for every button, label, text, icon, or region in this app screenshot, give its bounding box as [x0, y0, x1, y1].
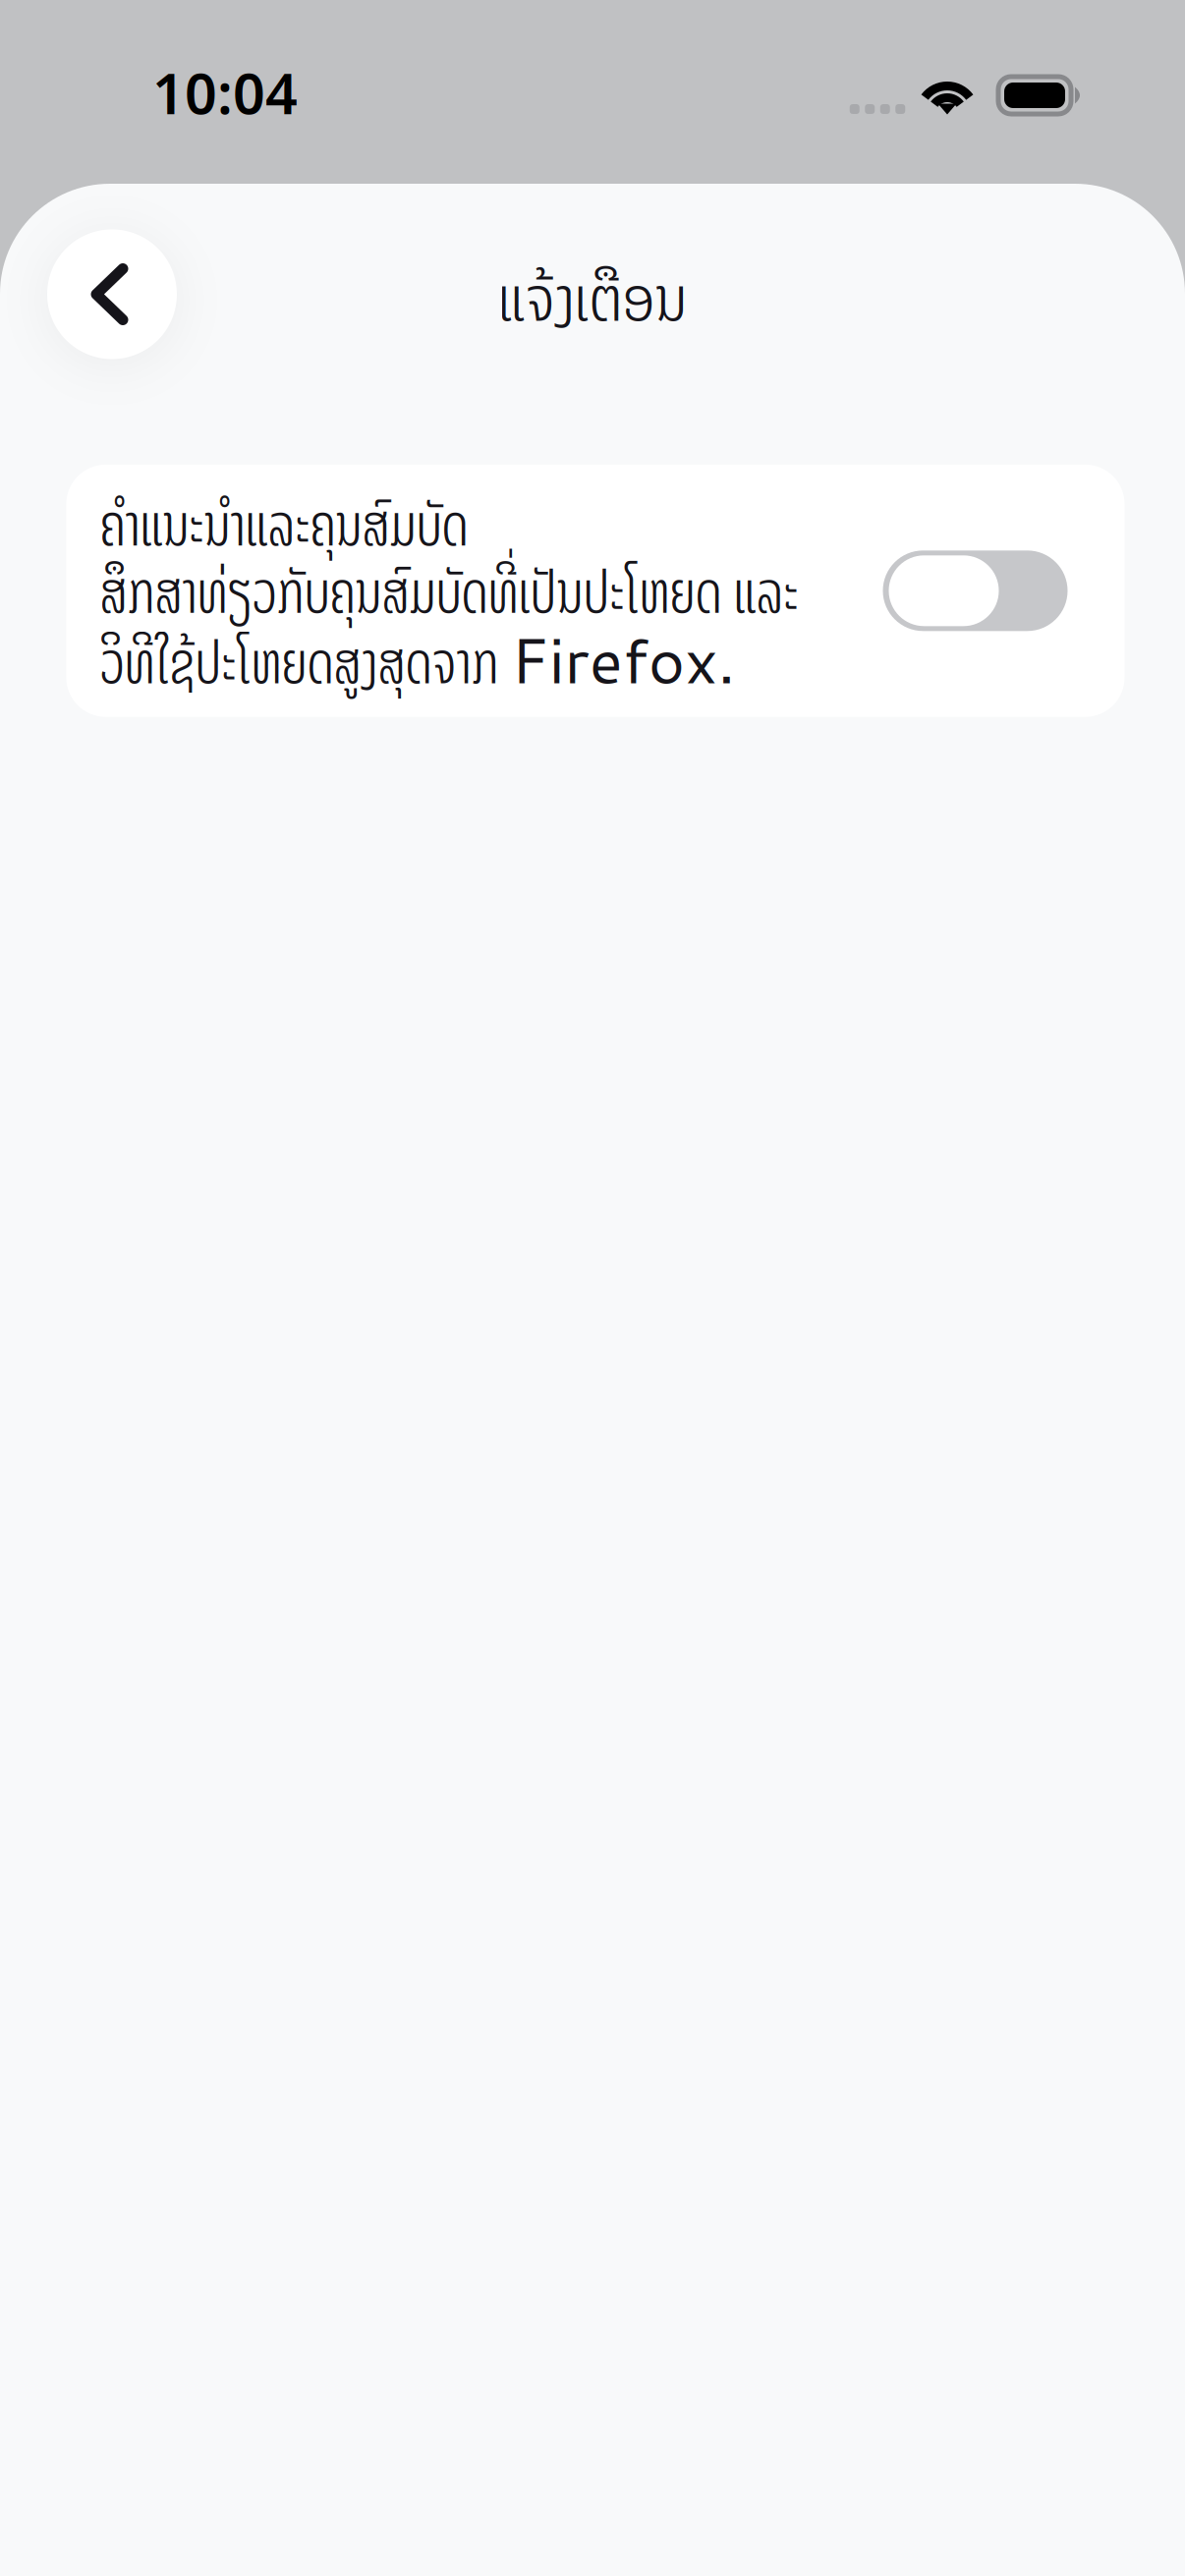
staticText: ຄຳແນະນຳແລະຄຸນສົມບັດ [100, 486, 468, 556]
button[interactable]: Tips and features notifications [883, 550, 1068, 631]
button[interactable]: Back [47, 229, 177, 359]
staticText: ແຈ້ງເຕືອນ [498, 248, 687, 341]
staticText: ສຶກສາທ່ຽວກັບຄຸນສົມບັດທີ່ເປັນປະໂຫຍດ ແລະ ວ… [100, 554, 798, 695]
button[interactable]: ຄຳແນະນຳແລະຄຸນສົມບັດ [66, 465, 1125, 717]
staticText: 10:04 [152, 55, 298, 130]
